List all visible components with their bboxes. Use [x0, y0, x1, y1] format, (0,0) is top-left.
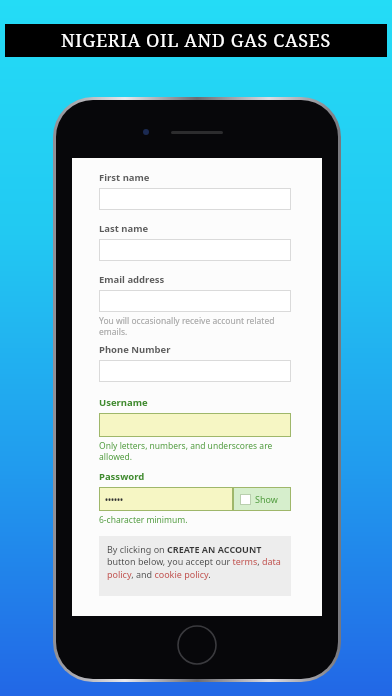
button[interactable]: ••••••	[99, 487, 233, 511]
staticText: ••••••	[105, 494, 124, 505]
staticText: You will occasionally receive account re…	[99, 315, 275, 337]
button[interactable]: NIGERIA OIL AND GAS CASES	[5, 24, 387, 57]
staticText: NIGERIA OIL AND GAS CASES	[61, 28, 331, 53]
staticText: Show	[255, 493, 278, 505]
button[interactable]: Home	[177, 625, 217, 665]
button[interactable]	[99, 290, 291, 312]
staticText: By clicking on CREATE AN ACCOUNT button …	[107, 543, 285, 581]
staticText: Phone Number	[99, 343, 171, 356]
button[interactable]: By clicking on CREATE AN ACCOUNT button …	[99, 536, 291, 596]
staticText: Username	[99, 396, 148, 409]
staticText: Password	[99, 470, 145, 483]
staticText: 6-character minimum.	[99, 514, 188, 526]
staticText: Email address	[99, 273, 165, 286]
button[interactable]	[99, 188, 291, 210]
staticText: Only letters, numbers, and underscores a…	[99, 440, 273, 462]
staticText: Last name	[99, 222, 149, 235]
staticText: First name	[99, 171, 150, 184]
button[interactable]	[99, 360, 291, 382]
button[interactable]: Show	[233, 487, 291, 511]
button[interactable]	[99, 239, 291, 261]
button[interactable]	[99, 413, 291, 437]
